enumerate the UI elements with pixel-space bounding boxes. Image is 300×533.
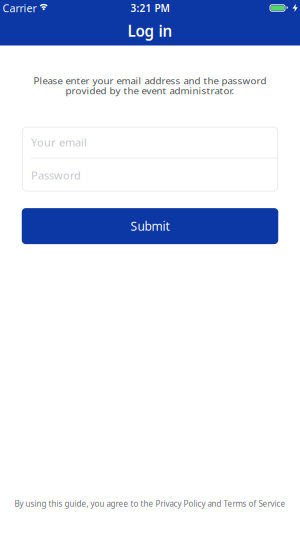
staticText: Your email — [31, 135, 87, 150]
staticText: Carrier — [2, 1, 36, 15]
staticText: Password — [31, 168, 81, 183]
staticText: Log in — [127, 20, 172, 41]
staticText: By using this guide, you agree to the Pr… — [14, 498, 285, 509]
staticText: provided by the event administrator. — [65, 84, 234, 97]
staticText: 3:21 PM — [130, 1, 169, 15]
staticText: Submit — [130, 218, 169, 234]
staticText: Please enter your email address and the … — [33, 74, 266, 87]
